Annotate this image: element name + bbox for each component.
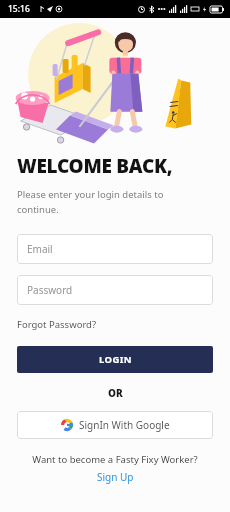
- button[interactable]: Forgot Password?: [17, 316, 97, 333]
- button[interactable]: SignIn With Google: [17, 411, 213, 439]
- staticText: SignIn With Google: [79, 418, 170, 432]
- button[interactable]: Sign Up: [94, 469, 137, 485]
- staticText: 15:16: [8, 3, 30, 15]
- button[interactable]: LOGIN: [17, 346, 213, 373]
- staticText: Sign Up: [97, 470, 134, 484]
- staticText: Password: [27, 283, 73, 297]
- staticText: Want to become a Fasty Fixy Worker?: [32, 453, 198, 466]
- button[interactable]: Password: [17, 275, 213, 305]
- staticText: Forgot Password?: [17, 318, 97, 331]
- staticText: WELCOME BACK,: [17, 153, 173, 179]
- staticText: LOGIN: [99, 353, 132, 366]
- staticText: OR: [108, 386, 123, 400]
- staticText: Please enter your login details to conti…: [17, 188, 164, 216]
- staticText: Email: [27, 242, 53, 256]
- button[interactable]: Email: [17, 234, 213, 264]
